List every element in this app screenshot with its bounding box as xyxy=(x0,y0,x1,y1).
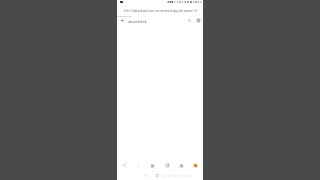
button[interactable]: Recents xyxy=(141,172,150,179)
button[interactable]: Refresh xyxy=(161,159,174,172)
button[interactable]: Menu xyxy=(189,159,202,172)
button[interactable]: Downloads xyxy=(146,159,159,172)
button[interactable]: Dismiss suggestion xyxy=(194,9,197,12)
button[interactable]: Forward xyxy=(132,159,145,172)
button[interactable]: Back xyxy=(121,19,124,22)
staticText: about:blank xyxy=(128,19,147,23)
button[interactable]: Back xyxy=(118,159,131,172)
staticText: file:///data/data/com.sec.android.app.sb… xyxy=(124,9,193,13)
staticText: internet.html xyxy=(117,14,132,17)
button[interactable]: Clear xyxy=(188,19,191,22)
button[interactable]: Tabs xyxy=(175,159,188,172)
button[interactable]: file:///data/data/com.sec.android.app.sb… xyxy=(117,8,203,18)
button[interactable]: Scan QR code xyxy=(197,19,200,22)
button[interactable]: Back xyxy=(165,172,174,179)
button[interactable]: Home xyxy=(153,172,162,179)
